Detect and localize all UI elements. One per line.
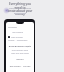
staticText: Everything you need to know about your m… — [5, 2, 35, 16]
staticText: Build financial habits — [6, 45, 34, 48]
staticText: Accounts — [8, 26, 17, 29]
staticText: Explore — [6, 58, 34, 61]
staticText: Main account — [11, 36, 23, 39]
staticText: that actually stick — [6, 49, 34, 52]
staticText: Track, budget and grow with ease — [8, 7, 32, 12]
staticText: Your balance — [12, 31, 23, 33]
staticText: Savings · Investments — [8, 39, 28, 41]
staticText: Get started · It's free — [6, 65, 34, 68]
staticText: Start your plan today — [6, 52, 34, 54]
button[interactable]: Accounts — [8, 26, 17, 29]
button[interactable]: Main account — [8, 35, 32, 39]
button[interactable]: Get started — [6, 65, 34, 68]
